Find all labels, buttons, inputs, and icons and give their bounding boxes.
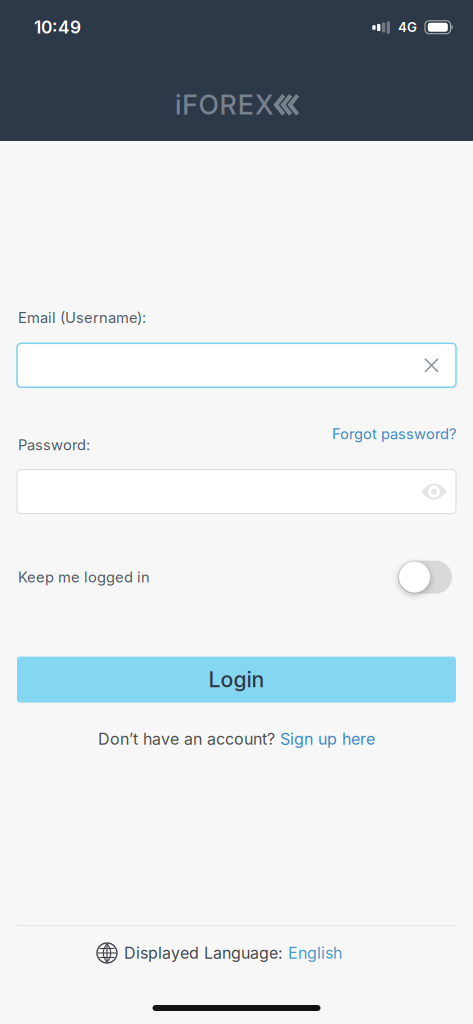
staticText: i <box>175 89 181 121</box>
staticText: O <box>198 89 218 121</box>
staticText: 4G <box>398 19 417 35</box>
staticText: 10:49 <box>34 17 81 37</box>
staticText: Don’t have an account? <box>98 730 275 748</box>
staticText: Login <box>208 667 264 692</box>
staticText: Keep me logged in <box>18 568 150 586</box>
staticText: X <box>255 89 273 121</box>
staticText: F <box>182 89 197 121</box>
staticText: Password: <box>18 436 90 454</box>
staticText: Forgot password? <box>332 425 456 443</box>
staticText: Email (Username): <box>18 309 146 326</box>
staticText: Sign up here <box>280 730 375 748</box>
staticText: R <box>220 89 237 121</box>
staticText: Displayed Language: <box>124 944 288 962</box>
staticText: E <box>238 89 254 121</box>
staticText: English <box>288 944 342 962</box>
